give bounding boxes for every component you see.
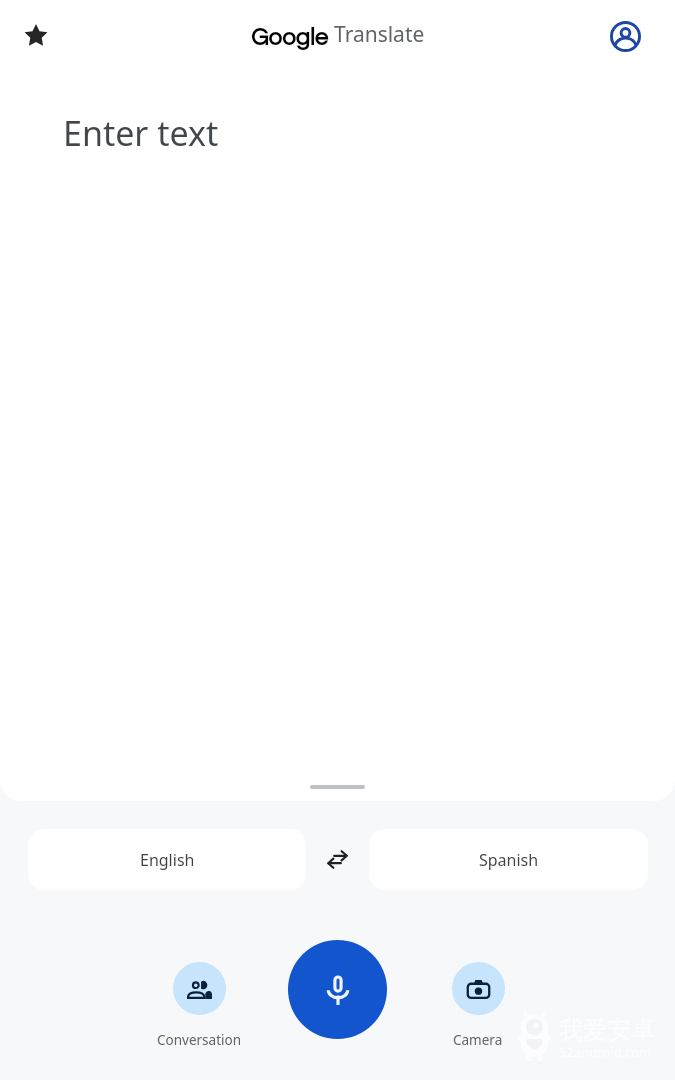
staticText: Enter text (63, 110, 219, 156)
button[interactable]: Swap languages (312, 834, 363, 885)
button[interactable]: Camera (422, 962, 534, 1049)
staticText: Google (251, 25, 328, 50)
button[interactable]: Microphone (288, 940, 387, 1039)
staticText: Camera (453, 1031, 503, 1049)
button[interactable]: English (28, 829, 306, 890)
staticText: Translate (334, 20, 425, 49)
button[interactable]: Account (605, 16, 645, 56)
button[interactable]: Saved (12, 12, 60, 60)
staticText: Conversation (157, 1031, 241, 1049)
button[interactable]: Conversation (143, 962, 255, 1049)
staticText: Spanish (479, 849, 539, 871)
staticText: English (140, 849, 195, 871)
button[interactable]: Spanish (369, 829, 648, 890)
